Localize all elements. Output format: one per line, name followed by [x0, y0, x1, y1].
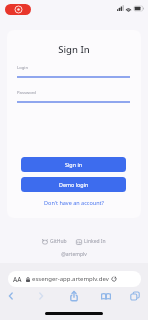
- staticText: @artemplv: [0, 251, 148, 258]
- button[interactable]: Demo login: [21, 177, 126, 192]
- staticText: AA: [13, 275, 22, 284]
- button[interactable]: Don't have an account?: [7, 199, 141, 206]
- staticText: GitHub: [50, 238, 67, 245]
- staticText: Password: [17, 90, 36, 96]
- button[interactable]: GitHub: [42, 238, 67, 245]
- other: Reload: [111, 276, 117, 282]
- staticText: Sign in: [65, 161, 83, 168]
- button[interactable]: Share: [66, 288, 82, 304]
- button[interactable]: Tabs: [127, 288, 143, 304]
- button[interactable]: Back: [3, 288, 19, 304]
- button[interactable]: Sign in: [21, 157, 126, 172]
- staticText: Login: [17, 65, 28, 71]
- staticText: Demo login: [59, 181, 89, 188]
- staticText: Linked In: [84, 238, 106, 245]
- staticText: Sign In: [7, 43, 141, 56]
- button[interactable]: AA: [8, 271, 141, 287]
- button[interactable]: Bookmarks: [98, 288, 114, 304]
- button[interactable]: Linked In: [76, 238, 106, 245]
- staticText: essenger-app.artemplv.dev: [32, 275, 109, 283]
- button[interactable]: Forward: [33, 288, 49, 304]
